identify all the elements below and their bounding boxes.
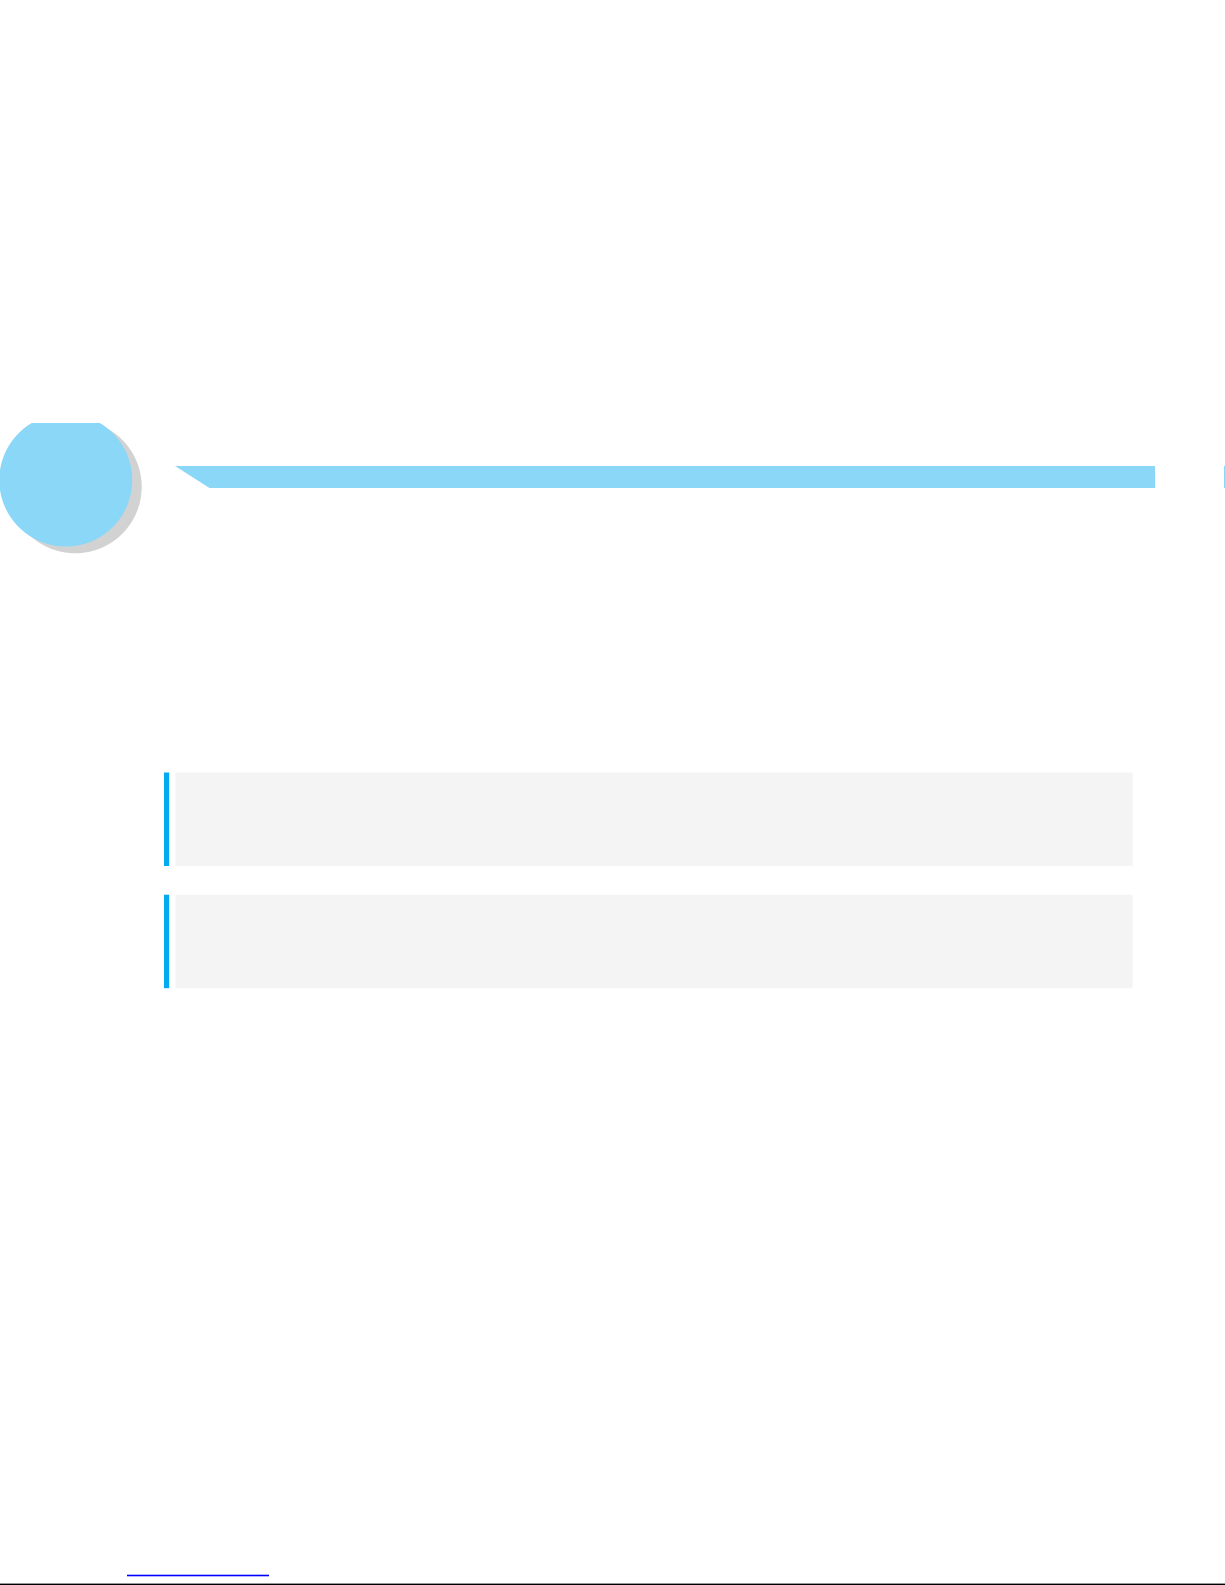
button[interactable]: Pull quote 1	[164, 772, 1133, 866]
button[interactable]: Profile photo	[0, 414, 142, 553]
button[interactable]: Pull quote 2	[164, 895, 1133, 988]
button[interactable]: Title	[175, 466, 1155, 488]
